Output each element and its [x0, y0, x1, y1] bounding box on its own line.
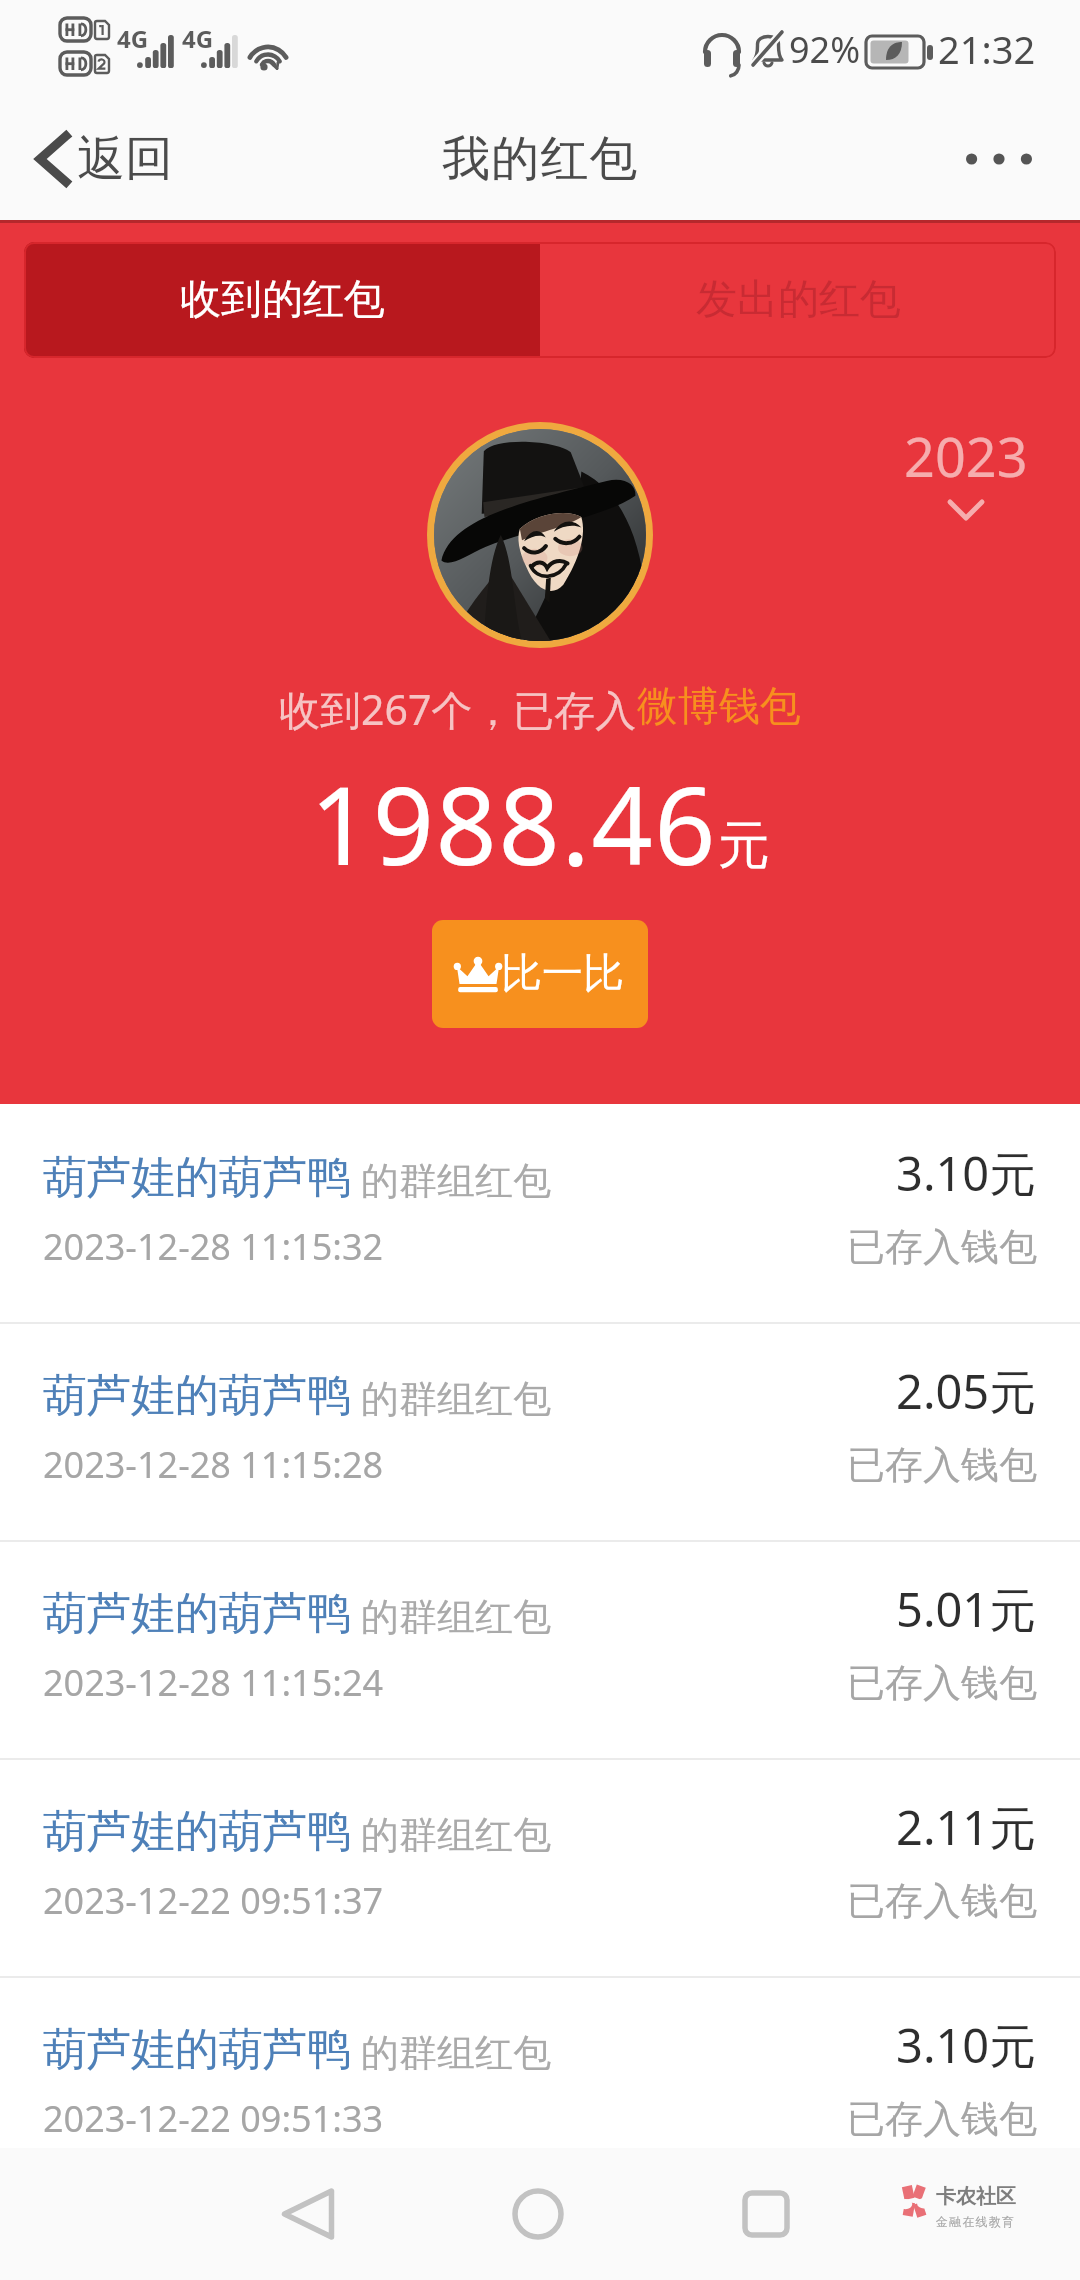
staticText: 已存入钱包	[847, 2095, 1037, 2143]
button[interactable]: 返回	[0, 115, 197, 203]
staticText: 3.10元	[896, 2013, 1037, 2077]
staticText: 金融在线教育	[936, 2214, 1016, 2229]
staticText: 3.10元	[896, 1141, 1037, 1205]
staticText: 2023-12-28 11:15:28	[43, 1440, 384, 1489]
staticText: 92%	[789, 25, 861, 74]
button[interactable]: 发出的红包	[540, 242, 1056, 358]
staticText: 4G	[182, 22, 214, 55]
staticText: 发出的红包	[696, 274, 901, 326]
staticText: 的群组红包	[351, 1807, 551, 1859]
button[interactable]: More options	[918, 127, 1080, 191]
button[interactable]: 收到的红包	[24, 242, 540, 358]
staticText: 21:32	[938, 23, 1036, 75]
staticText: 葫芦娃的葫芦鸭	[43, 2022, 351, 2077]
staticText: 比一比	[501, 948, 624, 1000]
staticText: 已存入钱包	[847, 1441, 1037, 1489]
staticText: 2023	[904, 419, 1028, 493]
staticText: 的群组红包	[351, 2025, 551, 2077]
staticText: 收到267个，已存入	[279, 681, 637, 737]
button[interactable]: Recent apps	[726, 2174, 806, 2254]
staticText: 元	[718, 813, 770, 879]
staticText: 2023-12-22 09:51:37	[43, 1876, 384, 1925]
staticText: 的群组红包	[351, 1589, 551, 1641]
staticText: 已存入钱包	[847, 1659, 1037, 1707]
staticText: 4G	[117, 22, 149, 55]
staticText: 微博钱包	[637, 681, 801, 733]
staticText: 已存入钱包	[847, 1223, 1037, 1271]
button[interactable]: 2023	[892, 407, 1040, 532]
button[interactable]: 葫芦娃的葫芦鸭	[0, 1978, 1080, 2194]
button[interactable]: 葫芦娃的葫芦鸭	[0, 1542, 1080, 1758]
staticText: 2023-12-28 11:15:24	[43, 1658, 384, 1707]
staticText: 2023-12-22 09:51:33	[43, 2094, 384, 2143]
staticText: 卡农社区	[936, 2184, 1016, 2209]
staticText: 2.05元	[896, 1359, 1037, 1423]
button[interactable]: 葫芦娃的葫芦鸭	[0, 1760, 1080, 1976]
staticText: 返回	[77, 129, 173, 189]
staticText: 2023-12-28 11:15:32	[43, 1222, 384, 1271]
staticText: 我的红包	[442, 129, 639, 189]
staticText: 葫芦娃的葫芦鸭	[43, 1150, 351, 1205]
staticText: 1988.46	[310, 751, 718, 897]
staticText: 的群组红包	[351, 1153, 551, 1205]
button[interactable]: Back	[268, 2174, 348, 2254]
staticText: 的群组红包	[351, 1371, 551, 1423]
staticText: 已存入钱包	[847, 1877, 1037, 1925]
staticText: 5.01元	[896, 1577, 1037, 1641]
button[interactable]: 葫芦娃的葫芦鸭	[0, 1324, 1080, 1540]
button[interactable]: 比一比	[432, 920, 648, 1028]
staticText: 葫芦娃的葫芦鸭	[43, 1804, 351, 1859]
staticText: 葫芦娃的葫芦鸭	[43, 1586, 351, 1641]
staticText: 收到的红包	[180, 274, 385, 326]
button[interactable]: 葫芦娃的葫芦鸭	[0, 1106, 1080, 1322]
staticText: 2.11元	[896, 1795, 1037, 1859]
button[interactable]: Home	[498, 2174, 578, 2254]
staticText: 葫芦娃的葫芦鸭	[43, 1368, 351, 1423]
